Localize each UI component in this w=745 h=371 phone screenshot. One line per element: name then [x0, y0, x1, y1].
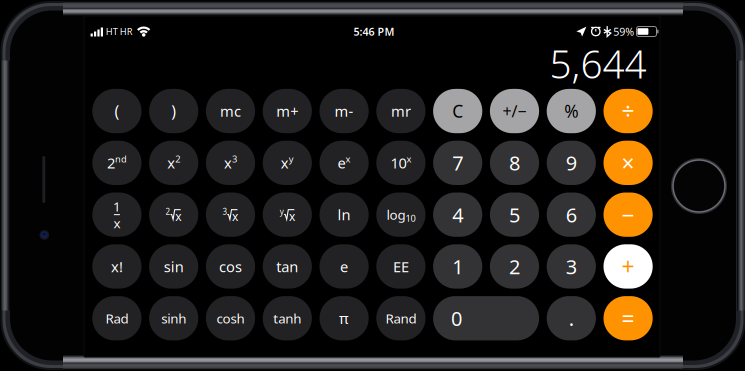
button[interactable]: sin	[149, 244, 198, 289]
button[interactable]: cosh	[206, 296, 255, 340]
button[interactable]: EE	[376, 244, 425, 289]
staticText: log	[386, 206, 405, 223]
staticText: π	[339, 308, 349, 328]
button[interactable]: x!	[92, 244, 141, 289]
button[interactable]: e	[319, 244, 369, 289]
staticText: (	[114, 100, 119, 122]
button[interactable]: 1	[433, 244, 482, 289]
staticText: 1	[113, 197, 121, 215]
staticText: x	[175, 208, 181, 224]
button[interactable]: x	[206, 141, 255, 185]
staticText: mr	[391, 101, 411, 121]
staticText: x	[113, 214, 120, 232]
button[interactable]: 9	[547, 141, 596, 185]
staticText: m+	[276, 101, 298, 121]
staticText: e	[340, 257, 348, 276]
staticText: =	[622, 303, 635, 333]
button[interactable]: 2	[490, 244, 539, 289]
staticText: Rad	[105, 309, 128, 327]
button[interactable]: =	[603, 296, 653, 340]
staticText: +	[622, 251, 635, 281]
staticText: sin	[164, 257, 184, 276]
staticText: e	[338, 153, 346, 173]
staticText: 5,644	[549, 38, 646, 89]
button[interactable]: x	[263, 141, 312, 185]
staticText: 2	[107, 153, 115, 173]
button[interactable]: e	[319, 141, 369, 185]
button[interactable]: log	[376, 192, 425, 237]
staticText: 9	[566, 150, 577, 176]
button[interactable]: ×	[603, 141, 653, 185]
button[interactable]: 6	[547, 192, 596, 237]
staticText: −	[622, 200, 635, 230]
staticText: tan	[276, 257, 298, 276]
staticText: %	[564, 99, 578, 122]
staticText: 2	[166, 206, 171, 217]
staticText: 59%	[613, 24, 634, 39]
staticText: 0	[451, 305, 462, 332]
button[interactable]: )	[149, 89, 198, 133]
button[interactable]: 1	[92, 192, 141, 237]
button[interactable]: −	[603, 192, 653, 237]
staticText: C	[452, 99, 463, 122]
staticText: 5	[509, 201, 520, 228]
button[interactable]: (	[92, 89, 141, 133]
button[interactable]: m+	[263, 89, 312, 133]
button[interactable]: tan	[263, 244, 312, 289]
button[interactable]: 2	[92, 141, 141, 185]
staticText: 4	[452, 201, 463, 228]
staticText: 1	[452, 253, 463, 280]
button[interactable]: ln	[319, 192, 369, 237]
button[interactable]: Rad	[92, 296, 141, 340]
button[interactable]: cos	[206, 244, 255, 289]
button[interactable]: C	[433, 89, 482, 133]
staticText: 10	[405, 212, 415, 224]
button[interactable]: 7	[433, 141, 482, 185]
staticText: .	[569, 305, 574, 332]
button[interactable]: tanh	[263, 296, 312, 340]
button[interactable]: +	[603, 244, 653, 289]
button[interactable]: 8	[490, 141, 539, 185]
button[interactable]: 0	[433, 296, 539, 340]
staticText: tanh	[273, 309, 301, 327]
button[interactable]: ÷	[603, 89, 653, 133]
staticText: 6	[566, 201, 577, 228]
staticText: +/−	[502, 100, 526, 122]
button[interactable]: mr	[376, 89, 425, 133]
staticText: HT HR	[106, 25, 133, 38]
button[interactable]: 4	[433, 192, 482, 237]
staticText: mc	[220, 101, 241, 121]
staticText: cosh	[216, 309, 244, 327]
button[interactable]: +/−	[490, 89, 539, 133]
button[interactable]: 3	[547, 244, 596, 289]
staticText: x	[281, 153, 289, 173]
button[interactable]: 2	[149, 192, 198, 237]
staticText: 3	[222, 206, 227, 217]
staticText: x!	[111, 257, 123, 276]
button[interactable]: Rand	[376, 296, 425, 340]
button[interactable]: .	[547, 296, 596, 340]
staticText: ln	[338, 205, 351, 224]
staticText: x	[232, 208, 238, 224]
button[interactable]: m-	[319, 89, 369, 133]
staticText: y	[289, 153, 294, 165]
button[interactable]: 10	[376, 141, 425, 185]
staticText: x	[167, 153, 175, 173]
button[interactable]: x	[149, 141, 198, 185]
staticText: y	[280, 206, 284, 217]
button[interactable]: 5	[490, 192, 539, 237]
button[interactable]: π	[319, 296, 369, 340]
staticText: x	[406, 153, 411, 165]
staticText: x	[224, 153, 232, 173]
button[interactable]: 3	[206, 192, 255, 237]
staticText: 3	[232, 153, 237, 165]
staticText: 3	[566, 253, 577, 280]
button[interactable]: %	[547, 89, 596, 133]
button[interactable]: y	[263, 192, 312, 237]
staticText: 10	[390, 153, 406, 173]
staticText: Rand	[385, 309, 416, 327]
button[interactable]: sinh	[149, 296, 198, 340]
staticText: sinh	[161, 309, 186, 327]
staticText: m-	[335, 101, 354, 121]
button[interactable]: mc	[206, 89, 255, 133]
